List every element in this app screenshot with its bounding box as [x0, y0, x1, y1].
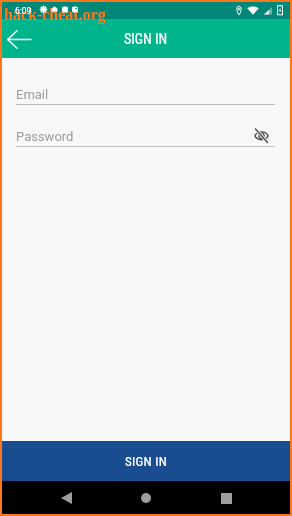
button[interactable]: Email	[16, 76, 275, 105]
button[interactable]: Recent apps	[213, 485, 239, 511]
button[interactable]: SIGN IN	[2, 441, 290, 481]
staticText: hack-cheat.org	[4, 6, 106, 24]
staticText: SIGN IN	[125, 454, 168, 469]
button[interactable]: Navigate up	[3, 23, 35, 55]
button[interactable]: Password	[16, 118, 275, 147]
button[interactable]: Back	[53, 485, 79, 511]
button[interactable]: Home	[133, 485, 159, 511]
staticText: 6:09	[15, 6, 32, 16]
staticText: Email	[16, 87, 49, 102]
button[interactable]: Show password	[250, 124, 272, 146]
staticText: SIGN IN	[124, 31, 168, 47]
staticText: Password	[16, 129, 74, 144]
